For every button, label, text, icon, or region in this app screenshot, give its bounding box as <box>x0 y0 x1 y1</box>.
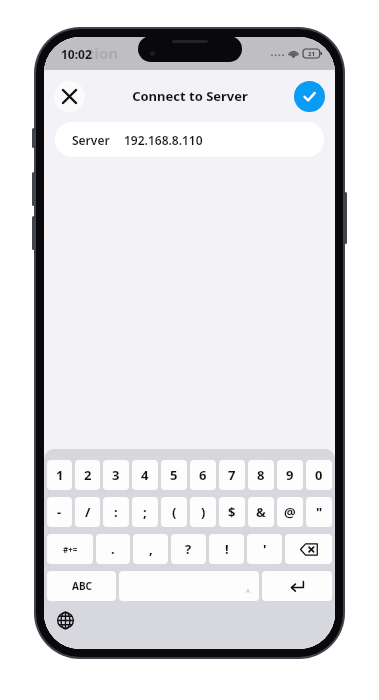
staticText: $ <box>228 503 236 521</box>
button[interactable]: ; <box>132 497 158 527</box>
staticText: , <box>149 540 153 558</box>
button[interactable]: 5 <box>161 460 187 490</box>
staticText: 10:02 <box>61 46 92 62</box>
button[interactable]: & <box>248 497 274 527</box>
staticText: 6 <box>199 466 207 484</box>
staticText: ( <box>172 503 177 521</box>
button[interactable]: ? <box>171 534 206 564</box>
button[interactable]: : <box>103 497 129 527</box>
staticText: " <box>316 503 323 521</box>
staticText: . <box>111 540 115 558</box>
staticText: ' <box>263 540 267 558</box>
button[interactable]: ) <box>190 497 216 527</box>
button[interactable]: 8 <box>248 460 274 490</box>
button[interactable]: Return <box>262 571 332 601</box>
button[interactable]: 0 <box>306 460 332 490</box>
staticText: 3 <box>112 466 120 484</box>
staticText: 0 <box>315 466 323 484</box>
button[interactable]: Change keyboard <box>52 607 78 633</box>
staticText: Server <box>72 132 110 148</box>
staticText: ; <box>143 503 147 521</box>
button[interactable]: 1 <box>47 460 72 490</box>
button[interactable]: ! <box>209 534 244 564</box>
staticText: 7 <box>228 466 236 484</box>
staticText: @ <box>284 503 296 521</box>
staticText: : <box>114 503 118 521</box>
button[interactable]: 4 <box>132 460 158 490</box>
staticText: ? <box>185 540 192 558</box>
staticText: 5 <box>170 466 178 484</box>
button[interactable]: . <box>96 534 130 564</box>
staticText: ! <box>225 540 229 558</box>
button[interactable]: 6 <box>190 460 216 490</box>
button[interactable]: 3 <box>103 460 129 490</box>
button[interactable]: 9 <box>277 460 303 490</box>
button[interactable]: - <box>47 497 72 527</box>
button[interactable]: 7 <box>219 460 245 490</box>
staticText: 21 <box>308 50 315 58</box>
staticText: 8 <box>257 466 265 484</box>
staticText: - <box>57 503 62 521</box>
button[interactable]: Close <box>54 81 85 112</box>
button[interactable]: Backspace <box>285 534 332 564</box>
button[interactable]: " <box>306 497 332 527</box>
staticText: ABC <box>72 579 92 593</box>
staticText: 9 <box>286 466 294 484</box>
button[interactable]: Confirm <box>294 81 325 112</box>
button[interactable]: ' <box>247 534 282 564</box>
button[interactable]: ABC <box>47 571 116 601</box>
staticText: Connect to Server <box>132 87 248 105</box>
staticText: 192.168.8.110 <box>124 132 203 148</box>
button[interactable]: @ <box>277 497 303 527</box>
staticText: & <box>256 503 266 521</box>
staticText: ) <box>201 503 206 521</box>
button[interactable]: Server <box>55 122 324 157</box>
staticText: 1 <box>56 466 64 484</box>
staticText: #+= <box>63 544 78 555</box>
staticText: / <box>85 503 91 521</box>
button[interactable]: 2 <box>75 460 100 490</box>
staticText: A <box>246 587 250 595</box>
button[interactable]: #+= <box>47 534 93 564</box>
button[interactable]: ( <box>161 497 187 527</box>
button[interactable]: / <box>75 497 100 527</box>
staticText: 4 <box>141 466 149 484</box>
button[interactable]: , <box>133 534 168 564</box>
button[interactable]: $ <box>219 497 245 527</box>
staticText: 2 <box>84 466 92 484</box>
staticText: tion <box>88 43 119 63</box>
